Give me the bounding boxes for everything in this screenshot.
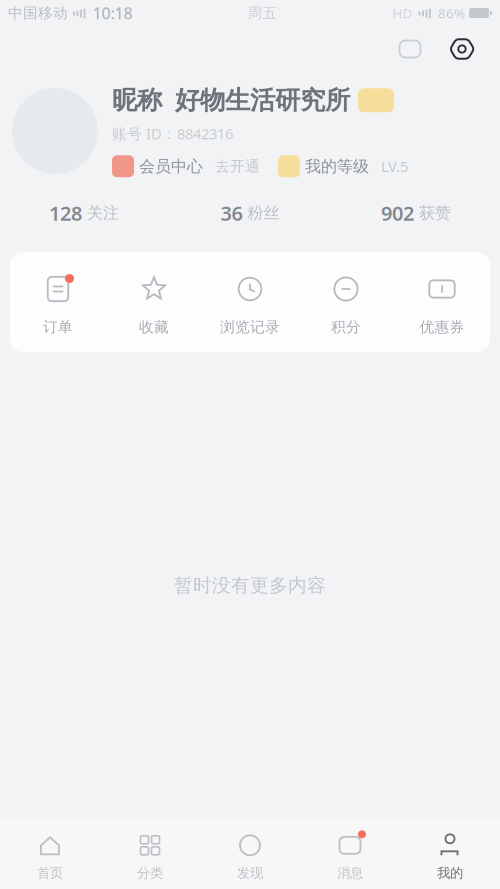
button[interactable]: 会员中心 — [112, 155, 260, 177]
button[interactable]: 902 — [333, 190, 499, 236]
staticText: 首页 — [37, 865, 63, 881]
staticText: LV.5 — [381, 157, 408, 176]
staticText: 浏览记录 — [220, 318, 280, 336]
button[interactable]: Messages — [390, 29, 430, 69]
button[interactable]: 收藏 — [106, 252, 202, 352]
staticText: 优惠券 — [419, 318, 464, 336]
button[interactable]: Avatar — [12, 88, 98, 174]
button[interactable]: Settings — [442, 29, 482, 69]
button[interactable]: 优惠券 — [394, 252, 490, 352]
staticText: 发现 — [237, 865, 263, 881]
staticText: 获赞 — [419, 203, 451, 223]
button[interactable]: 订单 — [10, 252, 106, 352]
staticText: 昵称 — [112, 85, 162, 116]
staticText: 好物生活研究所 — [175, 85, 350, 116]
staticText: 36 — [220, 200, 242, 226]
staticText: 积分 — [331, 318, 361, 336]
staticText: HD — [392, 4, 412, 22]
button[interactable]: 首页 — [0, 819, 100, 889]
staticText: 关注 — [87, 203, 119, 223]
staticText: 消息 — [337, 865, 363, 881]
staticText: 账号 ID：8842316 — [112, 124, 233, 143]
button[interactable]: 积分 — [298, 252, 394, 352]
button[interactable]: 我的等级 — [278, 155, 408, 177]
button[interactable]: 我的 — [400, 819, 500, 889]
staticText: 订单 — [43, 318, 73, 336]
staticText: 902 — [381, 200, 414, 226]
staticText: 我的等级 — [305, 156, 369, 176]
staticText: 去开通 — [215, 157, 260, 175]
staticText: 10:18 — [92, 2, 132, 24]
button[interactable]: 浏览记录 — [202, 252, 298, 352]
staticText: 128 — [49, 200, 82, 226]
staticText: 86% — [438, 4, 465, 22]
button[interactable]: 分类 — [100, 819, 200, 889]
staticText: 暂时没有更多内容 — [174, 574, 326, 597]
staticText: 收藏 — [139, 318, 169, 336]
staticText: 分类 — [137, 865, 163, 881]
staticText: 会员中心 — [139, 156, 203, 176]
staticText: 中国移动 — [8, 4, 68, 22]
button[interactable]: 128 — [1, 190, 167, 236]
button[interactable]: 36 — [167, 190, 333, 236]
button[interactable]: 消息 — [300, 819, 400, 889]
staticText: 周五 — [247, 4, 277, 22]
button[interactable]: 发现 — [200, 819, 300, 889]
staticText: 我的 — [437, 865, 463, 881]
staticText: 粉丝 — [247, 203, 279, 223]
